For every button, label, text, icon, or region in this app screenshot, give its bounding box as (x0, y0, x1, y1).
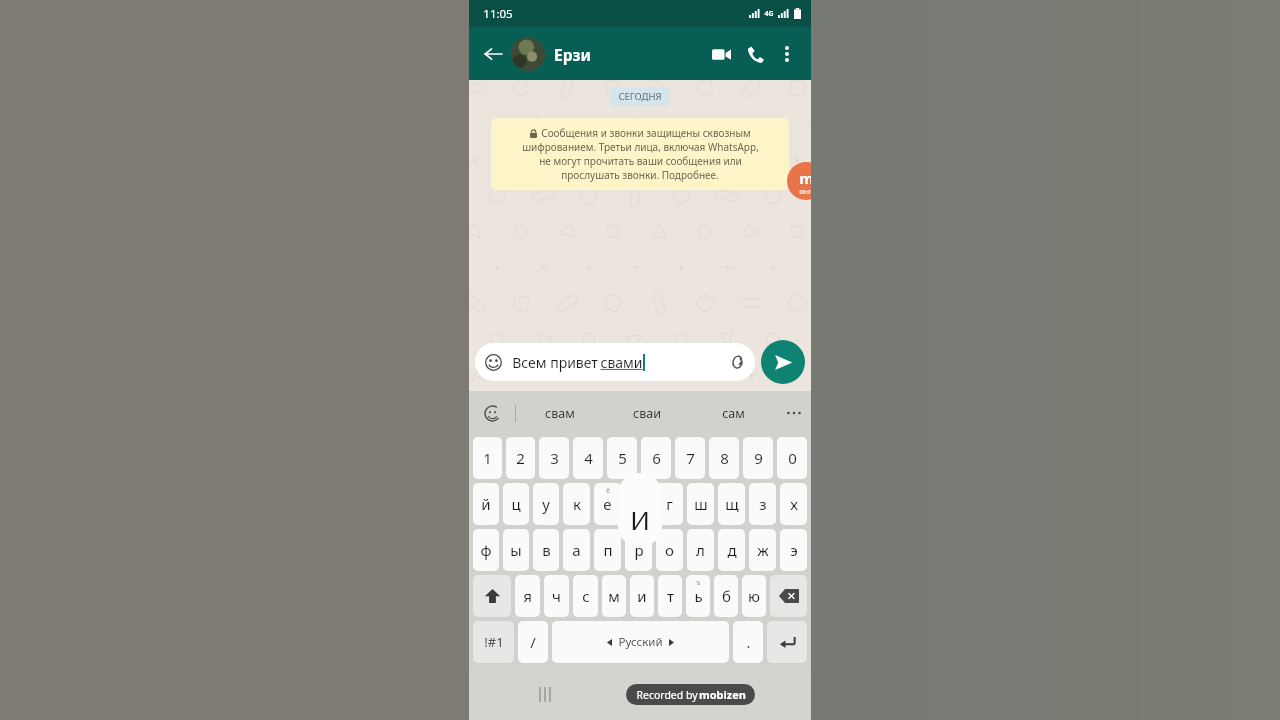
staticText: ц (511, 494, 521, 514)
staticText: ь (694, 586, 703, 606)
staticText: 2 (516, 448, 525, 468)
staticText: 3 (550, 448, 559, 468)
button[interactable]: Shift (473, 575, 511, 617)
button[interactable]: э (780, 529, 807, 571)
button[interactable]: ш (687, 483, 714, 525)
staticText: 4G (764, 9, 774, 19)
staticText: СЕГОДНЯ (618, 90, 662, 103)
button[interactable]: м (602, 575, 626, 617)
staticText: е (603, 494, 612, 514)
staticText: о (665, 540, 674, 560)
staticText: п (603, 540, 613, 560)
staticText: Сообщения и звонки защищены сквозным (541, 126, 751, 140)
button[interactable]: Сообщения и звонки защищены сквозным (491, 118, 789, 190)
button[interactable]: ф (473, 529, 499, 571)
button[interactable]: ж (749, 529, 776, 571)
button[interactable]: к (563, 483, 590, 525)
button[interactable]: о (656, 529, 683, 571)
button[interactable]: щ (718, 483, 745, 525)
button[interactable]: с (573, 575, 598, 617)
button[interactable]: н (625, 483, 652, 525)
button[interactable]: More suggestions (777, 391, 811, 435)
button[interactable]: т (658, 575, 682, 617)
button[interactable]: / (518, 621, 548, 663)
staticText: б (722, 586, 731, 606)
button[interactable]: сваи (603, 391, 690, 435)
staticText: сваи (633, 405, 661, 422)
button[interactable]: ю (742, 575, 766, 617)
staticText: / (530, 632, 536, 652)
button[interactable]: 3 (539, 437, 569, 479)
button[interactable]: Ерзи (511, 37, 704, 71)
button[interactable]: д (718, 529, 745, 571)
button[interactable]: свам (516, 391, 603, 435)
button[interactable]: п (594, 529, 621, 571)
staticText: 0 (788, 448, 797, 468)
staticText: л (696, 540, 705, 560)
staticText: Всем привет (510, 353, 600, 372)
button[interactable]: ц (503, 483, 529, 525)
button[interactable]: ь (686, 575, 710, 617)
button[interactable]: Всем привет (475, 343, 755, 381)
button[interactable]: р (625, 529, 652, 571)
button[interactable]: 5 (607, 437, 637, 479)
staticText: а (572, 540, 581, 560)
staticText: прослушать звонки. Подробнее. (561, 168, 719, 182)
button[interactable]: у (533, 483, 559, 525)
button[interactable]: 9 (743, 437, 773, 479)
staticText: шифрованием. Третьи лица, включая WhatsA… (522, 140, 759, 154)
button[interactable]: сам (690, 391, 777, 435)
button[interactable]: и (630, 575, 654, 617)
button[interactable]: Enter (767, 621, 807, 663)
button[interactable]: ы (503, 529, 529, 571)
button[interactable]: в (533, 529, 559, 571)
staticText: с (582, 586, 590, 606)
button[interactable]: Send (761, 340, 805, 384)
button[interactable]: х (780, 483, 807, 525)
staticText: 8 (720, 448, 729, 468)
button[interactable]: а (563, 529, 590, 571)
staticText: щ (725, 494, 739, 514)
button[interactable]: л (687, 529, 714, 571)
staticText: 00:07 (799, 188, 814, 195)
staticText: mobizen (699, 687, 746, 702)
button[interactable]: ч (544, 575, 569, 617)
button[interactable]: е (594, 483, 621, 525)
staticText: 5 (618, 448, 627, 468)
button[interactable]: 7 (675, 437, 705, 479)
button[interactable]: . (733, 621, 763, 663)
button[interactable]: Call (738, 37, 772, 71)
button[interactable]: 8 (709, 437, 739, 479)
button[interactable]: More options (772, 39, 802, 69)
button[interactable]: 2 (506, 437, 535, 479)
button[interactable]: 4 (573, 437, 603, 479)
button[interactable]: Emoji suggestions (469, 391, 515, 435)
staticText: ш (694, 494, 708, 514)
staticText: з (759, 494, 767, 514)
button[interactable]: 0 (777, 437, 807, 479)
staticText: не могут прочитать ваши сообщения или (539, 154, 742, 168)
button[interactable]: й (473, 483, 499, 525)
staticText: 4 (584, 448, 593, 468)
button[interactable]: г (656, 483, 683, 525)
staticText: и (637, 586, 647, 606)
button[interactable]: 6 (641, 437, 671, 479)
button[interactable]: Video call (704, 37, 738, 71)
button[interactable]: я (515, 575, 540, 617)
other: Attach (728, 354, 745, 371)
button[interactable]: Backspace (770, 575, 807, 617)
button[interactable]: Back (478, 39, 508, 69)
staticText: ч (552, 586, 561, 606)
button[interactable]: Mobizen recorder (787, 162, 825, 200)
staticText: ъ (696, 578, 701, 587)
button[interactable]: 1 (473, 437, 502, 479)
staticText: m (799, 168, 814, 188)
button[interactable]: Русский (552, 621, 729, 663)
staticText: . (746, 632, 751, 652)
staticText: ы (510, 540, 522, 560)
button[interactable]: б (714, 575, 738, 617)
button[interactable]: !#1 (473, 621, 514, 663)
staticText: свам (545, 405, 575, 422)
button[interactable]: з (749, 483, 776, 525)
staticText: в (542, 540, 551, 560)
